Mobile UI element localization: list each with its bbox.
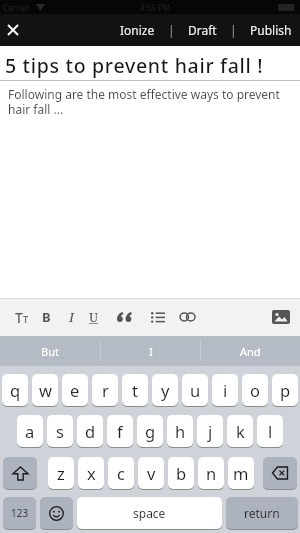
button[interactable]: T [15, 298, 29, 336]
staticText: e [70, 379, 80, 401]
button[interactable] [263, 457, 297, 489]
staticText: g [145, 420, 156, 442]
staticText: I [69, 308, 74, 326]
button[interactable]: I [63, 298, 79, 336]
staticText: q [10, 379, 21, 401]
button[interactable]: f [107, 415, 133, 447]
button[interactable]: x [78, 457, 104, 489]
staticText: U [89, 309, 99, 326]
button[interactable]: b [168, 457, 194, 489]
staticText: Carrier [3, 2, 30, 13]
button[interactable]: But [0, 336, 100, 366]
staticText: But [41, 344, 59, 359]
button[interactable] [8, 25, 18, 35]
button[interactable]: return [226, 497, 298, 529]
button[interactable]: k [227, 415, 253, 447]
staticText: | [168, 22, 175, 38]
staticText: z [57, 462, 65, 484]
button[interactable]: 123 [3, 497, 36, 529]
staticText: t [132, 379, 138, 401]
button[interactable]: r [92, 374, 118, 406]
button[interactable]: v [138, 457, 164, 489]
button[interactable]: y [152, 374, 178, 406]
button[interactable] [3, 457, 37, 489]
staticText: | [230, 22, 237, 38]
button[interactable]: n [198, 457, 224, 489]
staticText: k [236, 420, 245, 442]
staticText: space [133, 505, 166, 521]
button[interactable]: g [137, 415, 163, 447]
button[interactable]: q [2, 374, 28, 406]
button[interactable]: z [48, 457, 74, 489]
button[interactable]: c [108, 457, 134, 489]
staticText: 5 tips to prevent hair fall ! [5, 52, 264, 79]
staticText: 123 [11, 506, 29, 520]
button[interactable] [149, 298, 166, 336]
button[interactable] [114, 298, 136, 336]
button[interactable]: m [228, 457, 254, 489]
staticText: c [117, 462, 125, 484]
staticText: T [15, 308, 23, 327]
button[interactable]: space [77, 497, 222, 529]
staticText: I [149, 344, 153, 359]
button[interactable] [177, 298, 197, 336]
staticText: i [223, 379, 228, 401]
staticText: o [250, 379, 260, 401]
button[interactable]: s [47, 415, 73, 447]
button[interactable] [40, 497, 73, 529]
button[interactable]: a [17, 415, 43, 447]
button[interactable]: Draft [188, 22, 217, 38]
staticText: B [42, 308, 51, 326]
staticText: a [25, 420, 35, 442]
staticText: m [233, 462, 249, 484]
staticText: w [39, 379, 52, 401]
staticText: l [268, 420, 273, 442]
staticText: n [206, 462, 217, 484]
button[interactable]: B [38, 298, 54, 336]
staticText: Following are the most effective ways to… [8, 86, 280, 117]
button[interactable]: i [212, 374, 238, 406]
button[interactable]: o [242, 374, 268, 406]
button[interactable]: d [77, 415, 103, 447]
staticText: And [240, 344, 261, 359]
staticText: T [23, 313, 29, 326]
staticText: r [102, 379, 109, 401]
button[interactable]: t [122, 374, 148, 406]
staticText: y [161, 379, 170, 401]
button[interactable]: w [32, 374, 58, 406]
staticText: return [244, 505, 280, 521]
button[interactable]: h [167, 415, 193, 447]
button[interactable]: e [62, 374, 88, 406]
button[interactable]: Ionize [120, 22, 155, 38]
button[interactable] [272, 310, 290, 324]
button[interactable]: j [197, 415, 223, 447]
staticText: v [147, 462, 156, 484]
button[interactable]: And [201, 336, 300, 366]
button[interactable]: l [257, 415, 283, 447]
button[interactable]: U [86, 298, 102, 336]
staticText: s [56, 420, 64, 442]
staticText: j [208, 420, 213, 442]
staticText: p [280, 379, 291, 401]
staticText: f [117, 420, 123, 442]
staticText: d [85, 420, 96, 442]
button[interactable]: Publish [250, 22, 292, 38]
staticText: u [190, 379, 201, 401]
staticText: b [176, 462, 187, 484]
button[interactable]: u [182, 374, 208, 406]
staticText: 4:56 PM [140, 2, 171, 13]
button[interactable]: p [272, 374, 298, 406]
staticText: h [175, 420, 186, 442]
button[interactable]: I [101, 336, 200, 366]
staticText: x [87, 462, 96, 484]
